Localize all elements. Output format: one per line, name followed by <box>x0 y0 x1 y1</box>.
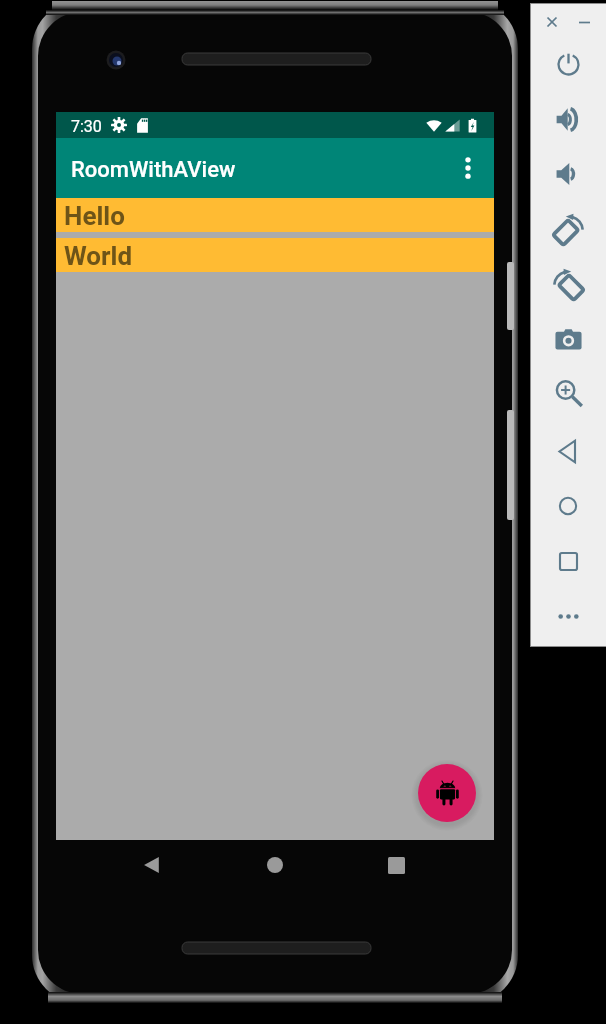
button[interactable]: Hello <box>56 198 494 232</box>
button[interactable]: Overview <box>545 538 591 584</box>
button[interactable]: Power <box>545 41 591 87</box>
staticText: Hello <box>64 201 125 231</box>
button[interactable]: Rotate left <box>545 205 591 251</box>
button[interactable]: Zoom <box>545 370 591 416</box>
button[interactable]: More options <box>445 145 491 191</box>
button[interactable]: World <box>56 238 494 272</box>
button[interactable]: More <box>545 593 591 639</box>
staticText: RoomWithAView <box>71 157 236 183</box>
button[interactable]: Back <box>132 845 172 885</box>
button[interactable]: Home <box>255 845 295 885</box>
button[interactable]: Minimize <box>571 9 597 35</box>
button[interactable]: Back <box>545 428 591 474</box>
button[interactable]: Add new word <box>418 764 476 822</box>
button[interactable]: Close <box>539 9 565 35</box>
button[interactable]: Take screenshot <box>545 316 591 362</box>
button[interactable]: Recents <box>376 845 416 885</box>
staticText: World <box>64 241 133 271</box>
staticText: 7:30 <box>71 117 102 136</box>
button[interactable]: Home <box>545 483 591 529</box>
button[interactable]: Volume down <box>545 151 591 197</box>
button[interactable]: Volume up <box>545 96 591 142</box>
button[interactable]: Rotate right <box>545 260 591 306</box>
